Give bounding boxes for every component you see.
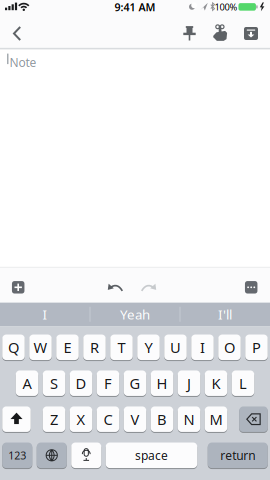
- button[interactable]: L: [232, 370, 254, 396]
- staticText: Q: [8, 338, 19, 357]
- staticText: T: [117, 338, 125, 357]
- button[interactable]: X: [70, 406, 92, 432]
- button[interactable]: N: [178, 406, 200, 432]
- button[interactable]: F: [97, 370, 119, 396]
- button[interactable]: [2, 406, 31, 432]
- staticText: I: [200, 338, 205, 357]
- button[interactable]: I'll: [181, 303, 269, 325]
- button[interactable]: space: [106, 442, 197, 469]
- button[interactable]: Z: [43, 406, 65, 432]
- button[interactable]: [104, 278, 126, 296]
- button[interactable]: M: [205, 406, 227, 432]
- button[interactable]: T: [110, 334, 133, 361]
- staticText: I: [42, 305, 47, 323]
- staticText: S: [50, 373, 58, 393]
- button[interactable]: C: [97, 406, 119, 432]
- button[interactable]: V: [124, 406, 146, 432]
- button[interactable]: [239, 406, 268, 432]
- staticText: P: [252, 338, 261, 357]
- staticText: H: [156, 373, 167, 393]
- button[interactable]: [7, 22, 27, 45]
- staticText: E: [63, 338, 71, 357]
- staticText: A: [22, 373, 31, 393]
- staticText: M: [209, 409, 222, 429]
- button[interactable]: D: [70, 370, 92, 396]
- button[interactable]: Q: [2, 334, 25, 361]
- button[interactable]: [137, 278, 159, 296]
- staticText: return: [220, 447, 255, 463]
- staticText: Note: [9, 54, 36, 70]
- staticText: N: [183, 409, 194, 429]
- staticText: 123: [8, 448, 26, 462]
- staticText: Z: [50, 409, 58, 429]
- button[interactable]: [207, 20, 233, 46]
- button[interactable]: K: [205, 370, 227, 396]
- button[interactable]: [237, 19, 265, 47]
- staticText: B: [157, 409, 167, 429]
- staticText: V: [130, 409, 139, 429]
- button[interactable]: A: [16, 370, 38, 396]
- button[interactable]: Y: [137, 334, 160, 361]
- button[interactable]: [71, 442, 101, 469]
- button[interactable]: S: [43, 370, 65, 396]
- button[interactable]: I: [1, 303, 89, 325]
- button[interactable]: [177, 21, 201, 45]
- staticText: C: [103, 409, 112, 429]
- staticText: R: [90, 338, 99, 357]
- button[interactable]: H: [151, 370, 173, 396]
- staticText: 9:41 AM: [114, 0, 155, 14]
- staticText: K: [211, 373, 220, 393]
- staticText: X: [76, 409, 85, 429]
- button[interactable]: [37, 442, 67, 469]
- button[interactable]: [240, 276, 262, 298]
- staticText: L: [239, 373, 247, 393]
- staticText: 100%: [214, 1, 237, 13]
- button[interactable]: I: [191, 334, 214, 361]
- button[interactable]: 123: [2, 442, 32, 469]
- button[interactable]: J: [178, 370, 200, 396]
- staticText: D: [75, 373, 86, 393]
- button[interactable]: E: [56, 334, 79, 361]
- button[interactable]: B: [151, 406, 173, 432]
- staticText: Y: [144, 338, 152, 357]
- button[interactable]: O: [218, 334, 241, 361]
- staticText: G: [129, 373, 140, 393]
- button[interactable]: return: [208, 442, 268, 469]
- staticText: W: [33, 338, 47, 357]
- staticText: U: [170, 338, 181, 357]
- button[interactable]: Yeah: [91, 303, 179, 325]
- staticText: O: [224, 338, 235, 357]
- staticText: Yeah: [120, 305, 150, 323]
- button[interactable]: W: [29, 334, 52, 361]
- staticText: space: [135, 447, 168, 463]
- button[interactable]: [7, 276, 29, 298]
- staticText: J: [187, 373, 191, 393]
- button[interactable]: P: [245, 334, 268, 361]
- staticText: I'll: [218, 305, 232, 323]
- button[interactable]: G: [124, 370, 146, 396]
- staticText: F: [104, 373, 112, 393]
- button[interactable]: U: [164, 334, 187, 361]
- button[interactable]: R: [83, 334, 106, 361]
